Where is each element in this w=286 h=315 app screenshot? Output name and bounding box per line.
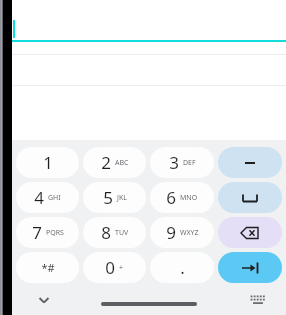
button[interactable]: Backspace [218, 217, 282, 248]
button[interactable]: 9 [150, 217, 214, 248]
staticText: 8 [101, 221, 111, 244]
staticText: + [119, 263, 124, 273]
staticText: DEF [183, 158, 196, 168]
staticText: *# [41, 260, 55, 275]
button[interactable]: 7 [16, 217, 79, 248]
button[interactable]: 1 [16, 147, 79, 178]
staticText: 7 [32, 221, 42, 244]
staticText: 6 [166, 186, 176, 209]
staticText: PQRS [46, 228, 64, 238]
staticText: WXYZ [180, 228, 199, 238]
staticText: 9 [166, 221, 176, 244]
button[interactable]: 3 [150, 147, 214, 178]
staticText: 5 [103, 186, 113, 209]
button[interactable]: Switch keyboard [244, 286, 272, 314]
staticText: ABC [115, 158, 129, 168]
button[interactable]: 0 [83, 252, 146, 283]
staticText: 4 [34, 186, 44, 209]
staticText: JKL [117, 193, 127, 203]
button[interactable]: 6 [150, 182, 214, 213]
button[interactable]: Enter [218, 252, 282, 283]
button[interactable]: Space [218, 182, 282, 213]
button[interactable]: 2 [83, 147, 146, 178]
staticText: . [180, 256, 185, 279]
button[interactable]: Hide keyboard [30, 286, 58, 314]
button[interactable]: . [150, 252, 214, 283]
staticText: GHI [48, 193, 61, 203]
button[interactable]: 8 [83, 217, 146, 248]
button[interactable]: Minus [218, 147, 282, 178]
button[interactable]: *# [16, 252, 79, 283]
staticText: 3 [169, 151, 179, 174]
staticText: TUV [115, 228, 129, 238]
staticText: 0 [105, 256, 115, 279]
button[interactable]: 4 [16, 182, 79, 213]
button[interactable]: 5 [83, 182, 146, 213]
staticText: 2 [101, 151, 111, 174]
staticText: 1 [43, 151, 53, 174]
staticText: MNO [180, 193, 198, 203]
